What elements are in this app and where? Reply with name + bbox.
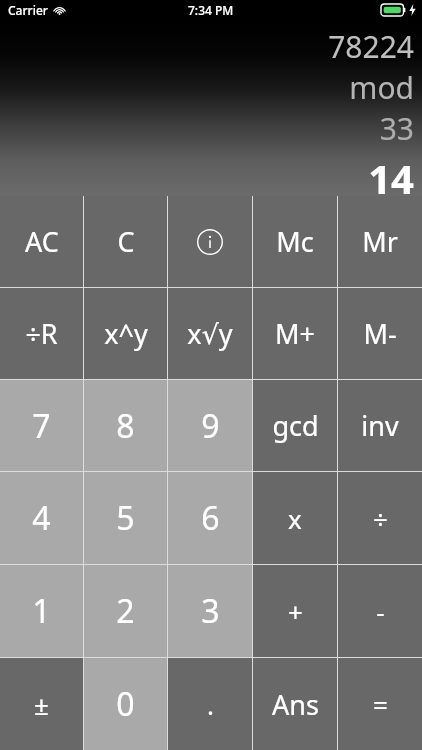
- staticText: x: [288, 501, 302, 536]
- staticText: 4: [32, 496, 51, 540]
- button[interactable]: ±: [0, 658, 83, 750]
- button[interactable]: inv: [338, 380, 422, 471]
- staticText: x√y: [187, 315, 233, 352]
- staticText: 0: [116, 682, 135, 726]
- staticText: 2: [116, 589, 135, 633]
- button[interactable]: 6: [168, 472, 252, 564]
- button[interactable]: x^y: [84, 288, 167, 379]
- button[interactable]: x√y: [168, 288, 252, 379]
- staticText: +: [288, 594, 303, 629]
- staticText: ÷: [373, 501, 388, 536]
- staticText: ÷R: [25, 315, 58, 352]
- button[interactable]: gcd: [253, 380, 337, 471]
- staticText: AC: [25, 223, 59, 260]
- staticText: 9: [201, 404, 220, 448]
- staticText: inv: [361, 407, 399, 444]
- button[interactable]: Info: [168, 196, 252, 287]
- button[interactable]: 1: [0, 565, 83, 657]
- staticText: 33: [379, 108, 414, 149]
- button[interactable]: 8: [84, 380, 167, 471]
- staticText: 14: [368, 151, 414, 196]
- staticText: x^y: [104, 315, 148, 352]
- button[interactable]: 7: [0, 380, 83, 471]
- button[interactable]: =: [338, 658, 422, 750]
- button[interactable]: 5: [84, 472, 167, 564]
- staticText: ±: [34, 687, 49, 722]
- staticText: Mc: [276, 223, 314, 260]
- staticText: mod: [349, 67, 414, 108]
- button[interactable]: C: [84, 196, 167, 287]
- staticText: M+: [275, 315, 315, 352]
- button[interactable]: 0: [84, 658, 167, 750]
- staticText: Ans: [272, 686, 319, 723]
- staticText: M-: [363, 315, 397, 352]
- button[interactable]: 3: [168, 565, 252, 657]
- staticText: C: [117, 223, 135, 260]
- staticText: gcd: [272, 407, 319, 444]
- button[interactable]: M-: [338, 288, 422, 379]
- button[interactable]: .: [168, 658, 252, 750]
- staticText: .: [207, 687, 214, 722]
- button[interactable]: Mr: [338, 196, 422, 287]
- button[interactable]: +: [253, 565, 337, 657]
- button[interactable]: Mc: [253, 196, 337, 287]
- button[interactable]: x: [253, 472, 337, 564]
- button[interactable]: ÷R: [0, 288, 83, 379]
- button[interactable]: 4: [0, 472, 83, 564]
- button[interactable]: ÷: [338, 472, 422, 564]
- staticText: 3: [201, 589, 220, 633]
- staticText: 6: [201, 496, 220, 540]
- button[interactable]: AC: [0, 196, 83, 287]
- staticText: Carrier: [8, 2, 48, 18]
- button[interactable]: 9: [168, 380, 252, 471]
- staticText: 8: [116, 404, 135, 448]
- staticText: -: [376, 594, 385, 629]
- staticText: Mr: [362, 223, 398, 260]
- button[interactable]: M+: [253, 288, 337, 379]
- button[interactable]: Ans: [253, 658, 337, 750]
- staticText: =: [373, 687, 388, 722]
- button[interactable]: 2: [84, 565, 167, 657]
- staticText: 5: [116, 496, 135, 540]
- button[interactable]: -: [338, 565, 422, 657]
- staticText: 78224: [328, 26, 414, 67]
- staticText: 7: [32, 404, 51, 448]
- staticText: 7:34 PM: [188, 2, 234, 18]
- staticText: 1: [32, 589, 51, 633]
